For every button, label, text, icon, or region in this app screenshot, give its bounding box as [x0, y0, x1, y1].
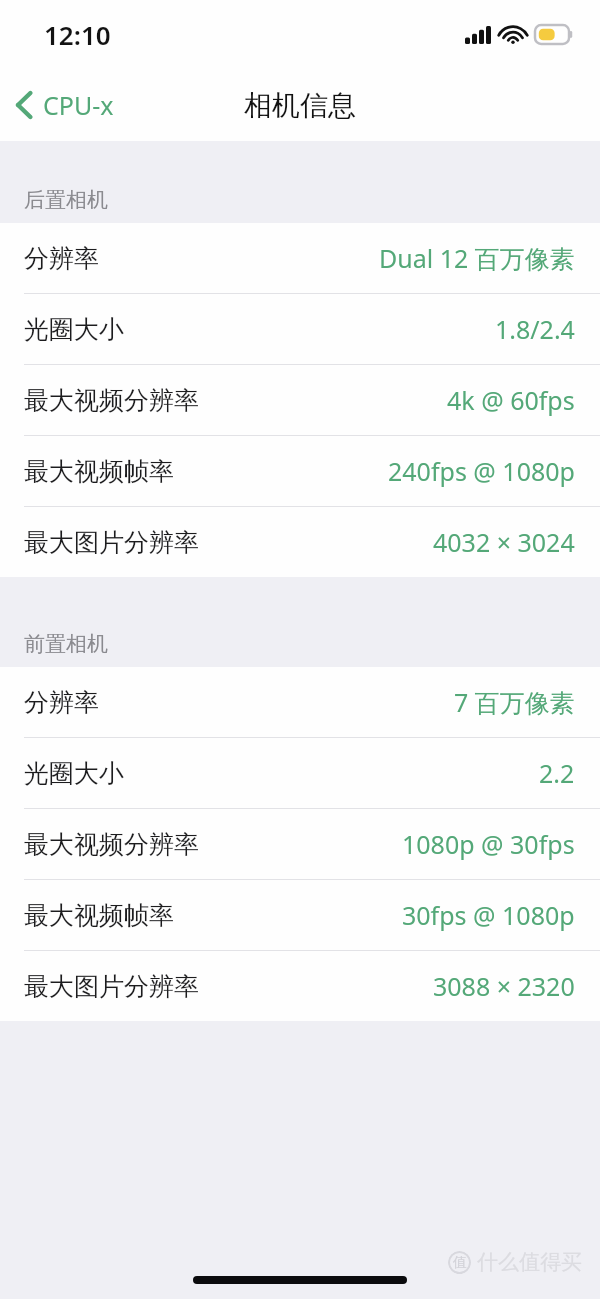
staticText: 1.8/2.4 [495, 312, 575, 346]
button[interactable]: 最大图片分辨率 [0, 507, 600, 577]
staticText: 光圈大小 [24, 758, 124, 789]
button[interactable]: 最大视频帧率 [0, 436, 600, 506]
staticText: 值 [453, 1254, 467, 1272]
staticText: 30fps @ 1080p [402, 898, 575, 932]
button[interactable]: 最大图片分辨率 [0, 951, 600, 1021]
button[interactable]: Back [0, 80, 128, 130]
staticText: 相机信息 [244, 88, 356, 123]
other: Back [14, 90, 34, 120]
staticText: 最大图片分辨率 [24, 527, 199, 558]
button[interactable]: 分辨率 [0, 223, 600, 293]
staticText: 240fps @ 1080p [388, 454, 575, 488]
staticText: 1080p @ 30fps [402, 827, 575, 861]
staticText: 最大视频帧率 [24, 456, 174, 487]
staticText: 3088 × 2320 [433, 969, 575, 1003]
staticText: 4k @ 60fps [447, 383, 575, 417]
staticText: 最大图片分辨率 [24, 971, 199, 1002]
button[interactable]: 分辨率 [0, 667, 600, 737]
button[interactable]: 光圈大小 [0, 294, 600, 364]
button[interactable]: 光圈大小 [0, 738, 600, 808]
staticText: 最大视频分辨率 [24, 829, 199, 860]
button[interactable]: 最大视频帧率 [0, 880, 600, 950]
staticText: 分辨率 [24, 687, 99, 718]
button[interactable]: 最大视频分辨率 [0, 365, 600, 435]
staticText: 7 百万像素 [454, 685, 575, 719]
staticText: 光圈大小 [24, 314, 124, 345]
staticText: CPU-x [43, 88, 114, 122]
staticText: 最大视频帧率 [24, 900, 174, 931]
staticText: 12:10 [44, 17, 111, 52]
staticText: 后置相机 [24, 187, 108, 213]
button[interactable]: 最大视频分辨率 [0, 809, 600, 879]
staticText: 4032 × 3024 [433, 525, 575, 559]
staticText: 分辨率 [24, 243, 99, 274]
staticText: 2.2 [539, 756, 575, 790]
staticText: Dual 12 百万像素 [379, 241, 575, 275]
staticText: 前置相机 [24, 631, 108, 657]
staticText: 最大视频分辨率 [24, 385, 199, 416]
staticText: 什么值得买 [477, 1249, 582, 1275]
